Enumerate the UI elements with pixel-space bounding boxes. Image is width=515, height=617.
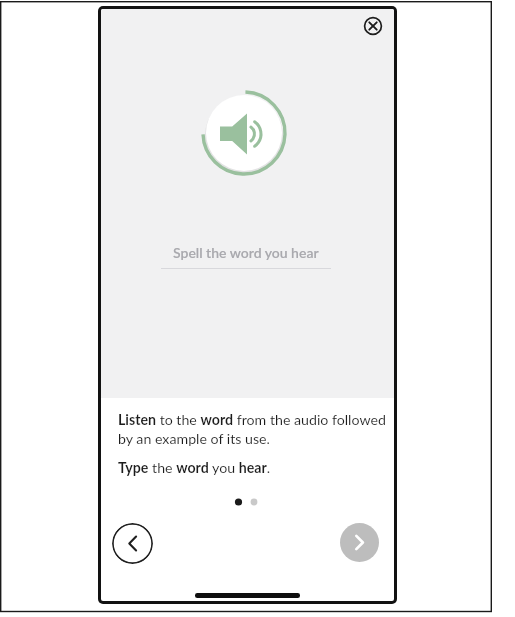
staticText: Type the word you hear.: [118, 459, 271, 476]
button[interactable]: [340, 523, 379, 562]
staticText: Listen to the word from the audio follow…: [118, 411, 394, 447]
button[interactable]: [194, 83, 294, 183]
button[interactable]: Spell the word you hear: [161, 244, 331, 269]
staticText: Spell the word you hear: [173, 244, 319, 261]
button[interactable]: [359, 12, 387, 40]
button[interactable]: [112, 523, 153, 564]
